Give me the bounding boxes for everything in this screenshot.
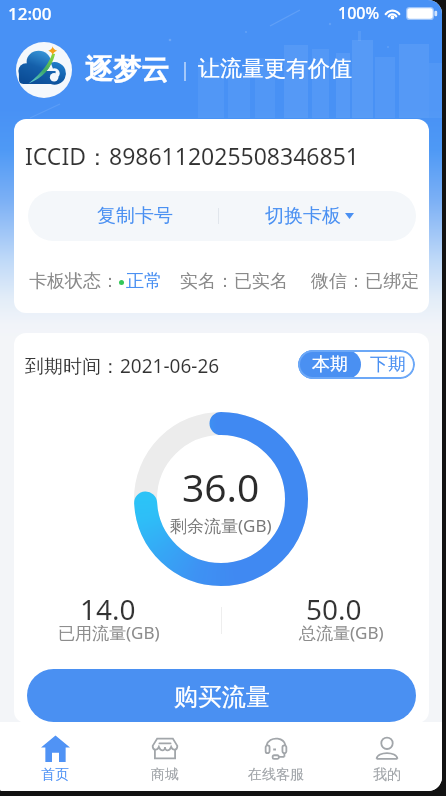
button[interactable]: 复制卡号 — [28, 191, 222, 241]
staticText: 实名：已实名 — [180, 270, 288, 293]
staticText: 我的 — [373, 766, 401, 784]
staticText: 36.0 — [182, 460, 260, 513]
staticText: 微信：已绑定 — [311, 270, 419, 293]
staticText: 逐梦云 — [85, 52, 169, 87]
staticText: 已用流量(GB) — [58, 621, 160, 644]
staticText: 切换卡板 — [265, 204, 341, 228]
staticText: 14.0 — [80, 590, 136, 628]
button[interactable]: 本期 — [298, 350, 361, 379]
button[interactable]: 我的 — [331, 722, 442, 791]
staticText: 剩余流量(GB) — [170, 514, 272, 537]
staticText: 购买流量 — [174, 682, 270, 712]
staticText: 首页 — [41, 766, 69, 784]
button[interactable]: 下期 — [361, 350, 415, 379]
button[interactable]: 切换卡板 — [222, 191, 416, 241]
staticText: 100% — [338, 2, 380, 24]
button[interactable]: 购买流量 — [27, 669, 416, 722]
staticText: 本期 — [312, 353, 348, 376]
staticText: 在线客服 — [248, 766, 304, 784]
staticText: 商城 — [151, 766, 179, 784]
staticText: 12:00 — [8, 2, 52, 25]
button[interactable]: 在线客服 — [220, 722, 331, 791]
button[interactable]: 首页 — [0, 722, 110, 791]
staticText: 下期 — [370, 353, 406, 376]
staticText: 50.0 — [306, 590, 362, 628]
staticText: 让流量更有价值 — [198, 55, 352, 83]
staticText: 总流量(GB) — [299, 621, 384, 644]
staticText: 正常 — [126, 270, 162, 293]
button[interactable]: 商城 — [110, 722, 220, 791]
staticText: ICCID：8986112025508346851 — [25, 140, 359, 171]
staticText: 卡板状态： — [29, 270, 119, 293]
staticText: 复制卡号 — [97, 204, 173, 228]
staticText: 到期时间：2021-06-26 — [25, 353, 220, 379]
